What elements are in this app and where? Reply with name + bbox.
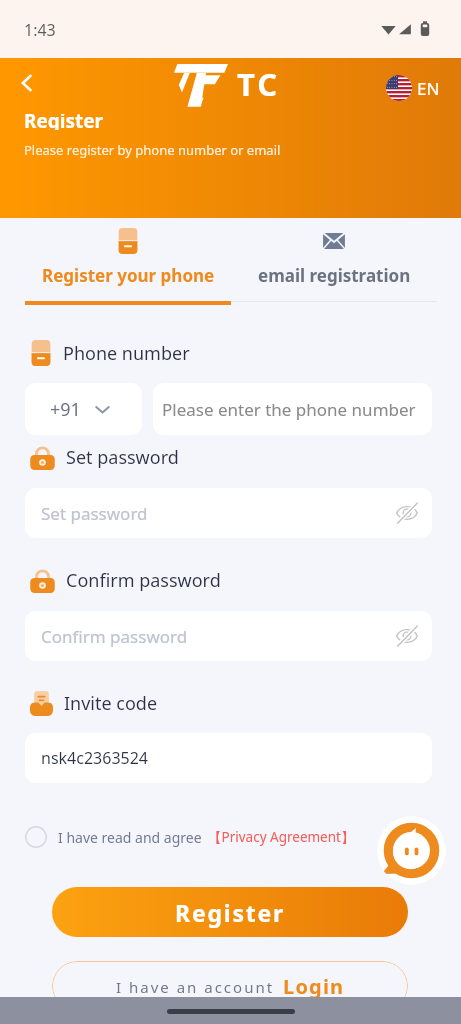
button[interactable]: Register [52,887,408,937]
staticText: Please enter the phone number [162,398,416,421]
button[interactable]: I have read and agree [25,824,355,850]
button[interactable]: I have an account [52,961,408,1011]
button[interactable]: Show password [393,622,421,650]
button[interactable]: +91 [25,383,142,435]
staticText: 【Privacy Agreement】 [208,828,355,846]
button[interactable]: Customer service chat [377,816,446,885]
button[interactable]: EN [386,75,440,101]
staticText: nsk4c2363524 [41,747,148,769]
staticText: email registration [258,264,411,287]
button[interactable]: Register your phone [25,218,231,305]
staticText: +91 [50,397,81,422]
button[interactable]: Back [11,67,43,99]
staticText: Please register by phone number or email [24,141,281,159]
staticText: Register your phone [42,264,215,287]
staticText: Invite code [64,691,158,716]
staticText: Phone number [63,341,190,366]
staticText: 1:43 [24,19,56,41]
staticText: EN [417,77,440,100]
staticText: Set password [66,445,179,470]
staticText: TC [237,63,281,105]
staticText: I have an account [116,977,275,997]
staticText: Register [24,114,104,130]
staticText: Login [283,973,345,1000]
staticText: Set password [41,502,148,525]
staticText: Confirm password [66,568,221,593]
staticText: Register [175,897,286,928]
staticText: Confirm password [41,625,188,648]
button[interactable]: Please enter the phone number [153,383,432,435]
button[interactable]: Confirm password [25,611,432,661]
button[interactable]: Set password [25,488,432,538]
staticText: I have read and agree [58,828,202,847]
button[interactable]: email registration [231,218,437,302]
button[interactable]: Show password [393,499,421,527]
button[interactable]: nsk4c2363524 [25,733,432,783]
